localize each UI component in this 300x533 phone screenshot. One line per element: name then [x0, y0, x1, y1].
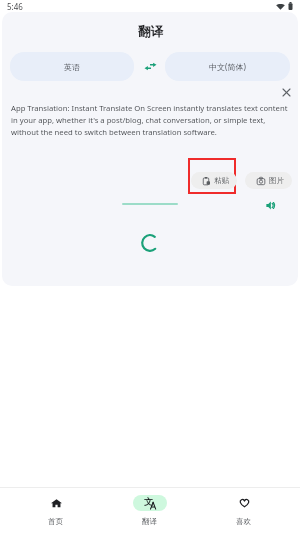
staticText: App Translation: Instant Translate On Sc… [11, 103, 288, 113]
staticText: 中文(简体) [209, 61, 246, 72]
button[interactable]: 粘贴 [191, 172, 237, 189]
button[interactable]: 中文(简体) [165, 52, 290, 81]
staticText: in your app, whether it's a post/blog, c… [11, 115, 266, 125]
staticText: 首页 [48, 517, 64, 527]
button[interactable]: Speak [262, 197, 278, 213]
staticText: 喜欢 [236, 517, 252, 527]
button[interactable]: 文 [103, 488, 197, 533]
button[interactable]: Close [278, 84, 294, 100]
staticText: without the need to switch between trans… [11, 127, 217, 137]
button[interactable]: 首页 [9, 488, 103, 533]
button[interactable]: 英语 [10, 52, 134, 81]
button[interactable]: Swap languages [143, 59, 157, 73]
staticText: 英语 [64, 62, 80, 72]
button[interactable]: 喜欢 [197, 488, 291, 533]
staticText: 翻译 [138, 24, 163, 40]
staticText: 文 [144, 496, 153, 507]
button[interactable]: 图片 [245, 172, 292, 189]
staticText: 翻译 [142, 517, 158, 527]
staticText: 5:46 [7, 1, 23, 12]
staticText: 粘贴 [214, 176, 229, 185]
staticText: 图片 [269, 176, 284, 185]
